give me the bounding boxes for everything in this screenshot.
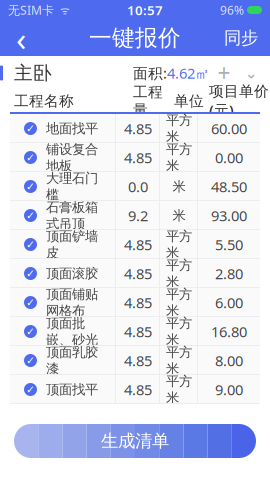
staticText: 同步	[224, 27, 258, 49]
button[interactable]: ✓	[10, 346, 260, 375]
staticText: ✓	[26, 296, 35, 308]
staticText: 面积:	[133, 63, 167, 83]
staticText: ‹	[16, 16, 26, 60]
staticText: 生成清单	[101, 430, 169, 452]
button[interactable]: Add item	[210, 59, 238, 87]
staticText: 米	[172, 207, 185, 224]
staticText: +	[217, 58, 230, 88]
staticText: 0.00	[215, 148, 243, 167]
staticText: 顶面铲墙皮	[46, 228, 98, 261]
staticText: 60.00	[211, 119, 247, 138]
staticText: ✓	[26, 209, 35, 221]
staticText: 9.2	[128, 206, 148, 225]
staticText: 主卧	[14, 61, 52, 84]
button[interactable]: ✓	[10, 230, 260, 259]
staticText: 4.85	[124, 322, 152, 341]
staticText: 平方米	[166, 228, 192, 261]
staticText: 4.85	[124, 264, 152, 283]
staticText: 顶面找平	[46, 381, 98, 398]
staticText: 96%	[220, 2, 244, 18]
staticText: 石膏板箱式吊顶	[46, 199, 98, 232]
staticText: 9.00	[215, 380, 243, 399]
button[interactable]: ✓	[10, 201, 260, 230]
staticText: 工程量	[133, 83, 163, 119]
button[interactable]: 生成清单	[14, 424, 256, 458]
button[interactable]: ✓	[10, 143, 260, 172]
staticText: 4.85	[124, 148, 152, 167]
staticText: 平方米	[166, 286, 192, 319]
staticText: 无SIM卡	[8, 2, 54, 18]
staticText: 米	[172, 178, 185, 195]
button[interactable]: ✓	[10, 114, 260, 143]
button[interactable]: Back	[0, 20, 42, 56]
staticText: ✓	[26, 383, 35, 395]
staticText: ✓	[26, 238, 35, 250]
staticText: 4.85	[124, 380, 152, 399]
staticText: 一键报价	[89, 24, 181, 52]
staticText: 48.50	[211, 177, 247, 196]
button[interactable]: Collapse section	[238, 59, 264, 87]
staticText: 地面找平	[46, 120, 98, 137]
staticText: 4.85	[124, 119, 152, 138]
staticText: 4.85	[124, 293, 152, 312]
button[interactable]: ✓	[10, 375, 260, 404]
staticText: 平方米	[166, 373, 192, 406]
button[interactable]: ✓	[10, 259, 260, 288]
staticText: ⌄	[244, 64, 257, 82]
staticText: ✓	[26, 122, 35, 134]
staticText: ✓	[26, 267, 35, 279]
staticText: ᯤ	[54, 3, 70, 17]
staticText: 4.85	[124, 235, 152, 254]
staticText: 铺设复合地板	[46, 141, 98, 174]
staticText: 4.85	[124, 351, 152, 370]
staticText: 平方米	[166, 141, 192, 174]
staticText: 平方米	[166, 112, 192, 145]
staticText: 2.80	[215, 264, 243, 283]
button[interactable]: 同步	[212, 20, 270, 56]
staticText: 平方米	[166, 315, 192, 348]
staticText: ✓	[26, 354, 35, 366]
staticText: 4.62㎡	[167, 63, 210, 83]
staticText: 6.00	[215, 293, 243, 312]
staticText: 8.00	[215, 351, 243, 370]
staticText: 工程名称	[14, 92, 74, 110]
staticText: 顶面乳胶漆	[46, 344, 98, 377]
button[interactable]: ✓	[10, 288, 260, 317]
staticText: 平方米	[166, 344, 192, 377]
staticText: 单位	[174, 92, 204, 110]
staticText: 10:57	[127, 1, 163, 19]
staticText: 0.0	[128, 177, 148, 196]
staticText: 顶面滚胶	[46, 265, 98, 282]
staticText: 5.50	[215, 235, 243, 254]
staticText: 16.80	[211, 322, 247, 341]
button[interactable]: ✓	[10, 172, 260, 201]
staticText: 平方米	[166, 257, 192, 290]
staticText: ✓	[26, 325, 35, 337]
staticText: 大理石门槛	[46, 170, 98, 203]
button[interactable]: ✓	[10, 317, 260, 346]
staticText: 项目单价(元)	[209, 82, 269, 120]
staticText: ✓	[26, 151, 35, 163]
staticText: 顶面批嵌、砂光	[46, 315, 98, 348]
staticText: 93.00	[211, 206, 247, 225]
staticText: ✓	[26, 180, 35, 192]
staticText: 顶面铺贴网格布	[46, 286, 98, 319]
